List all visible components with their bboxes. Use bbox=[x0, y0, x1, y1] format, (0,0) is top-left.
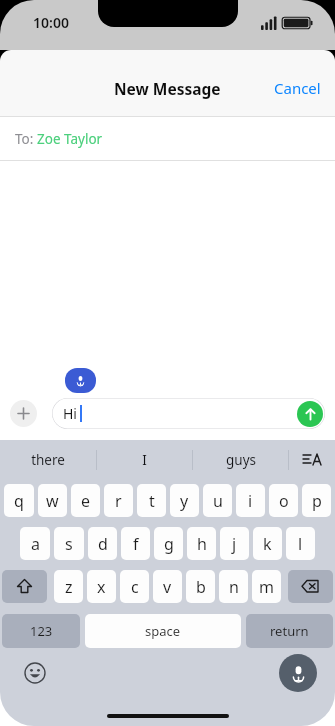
button[interactable]: Add attachment bbox=[10, 400, 37, 427]
staticText: k bbox=[263, 533, 272, 555]
button[interactable]: Formatting bbox=[289, 440, 335, 480]
button[interactable]: c bbox=[120, 570, 149, 603]
staticText: guys bbox=[226, 451, 256, 469]
staticText: return bbox=[270, 622, 309, 640]
button[interactable]: Shift bbox=[2, 570, 47, 603]
button[interactable]: space bbox=[85, 614, 241, 648]
button[interactable]: Emoji bbox=[22, 660, 48, 686]
button[interactable]: n bbox=[219, 570, 248, 603]
button[interactable]: r bbox=[104, 484, 133, 517]
button[interactable]: Backspace bbox=[288, 570, 333, 603]
staticText: q bbox=[14, 490, 24, 512]
button[interactable]: q bbox=[4, 484, 34, 517]
staticText: j bbox=[232, 533, 237, 555]
button[interactable]: s bbox=[54, 527, 84, 560]
button[interactable]: g bbox=[154, 527, 183, 560]
button[interactable]: z bbox=[54, 570, 83, 603]
button[interactable]: Send bbox=[297, 401, 323, 427]
staticText: u bbox=[213, 490, 223, 512]
button[interactable]: Dictation bbox=[279, 654, 317, 692]
button[interactable]: f bbox=[121, 527, 150, 560]
staticText: y bbox=[180, 490, 189, 512]
button[interactable]: k bbox=[253, 527, 282, 560]
button[interactable]: j bbox=[220, 527, 249, 560]
button[interactable]: b bbox=[186, 570, 215, 603]
staticText: Hi bbox=[63, 404, 77, 423]
staticText: I bbox=[142, 451, 147, 469]
staticText: o bbox=[279, 490, 289, 512]
button[interactable]: m bbox=[252, 570, 281, 603]
staticText: d bbox=[98, 533, 108, 555]
button[interactable]: return bbox=[246, 614, 333, 648]
button[interactable]: d bbox=[88, 527, 117, 560]
button[interactable]: 123 bbox=[2, 614, 80, 648]
staticText: 123 bbox=[30, 622, 53, 640]
staticText: Zoe Taylor bbox=[37, 130, 103, 148]
button[interactable]: u bbox=[203, 484, 232, 517]
button[interactable]: there bbox=[0, 440, 96, 480]
button[interactable]: l bbox=[286, 527, 315, 560]
staticText: l bbox=[298, 533, 303, 555]
staticText: e bbox=[81, 490, 91, 512]
button[interactable]: To: bbox=[0, 117, 335, 160]
staticText: a bbox=[31, 533, 40, 555]
staticText: To: bbox=[15, 130, 37, 148]
staticText: Cancel bbox=[274, 78, 321, 98]
button[interactable]: Hi bbox=[52, 398, 325, 429]
staticText: s bbox=[65, 533, 73, 555]
staticText: i bbox=[248, 490, 253, 512]
staticText: p bbox=[312, 490, 322, 512]
staticText: there bbox=[31, 451, 65, 469]
staticText: space bbox=[145, 622, 181, 640]
staticText: b bbox=[196, 576, 206, 598]
button[interactable]: guys bbox=[193, 440, 288, 480]
staticText: t bbox=[149, 490, 155, 512]
staticText: c bbox=[131, 576, 139, 598]
button[interactable]: I bbox=[97, 440, 192, 480]
staticText: n bbox=[229, 576, 239, 598]
staticText: g bbox=[164, 533, 174, 555]
button[interactable]: y bbox=[170, 484, 199, 517]
button[interactable]: w bbox=[38, 484, 67, 517]
button[interactable]: i bbox=[236, 484, 265, 517]
button[interactable]: e bbox=[71, 484, 100, 517]
staticText: f bbox=[133, 533, 139, 555]
button[interactable]: a bbox=[20, 527, 50, 560]
staticText: h bbox=[197, 533, 207, 555]
staticText: New Message bbox=[114, 78, 221, 99]
button[interactable]: h bbox=[187, 527, 216, 560]
button[interactable]: x bbox=[87, 570, 116, 603]
staticText: x bbox=[97, 576, 106, 598]
button[interactable]: p bbox=[302, 484, 331, 517]
button[interactable]: o bbox=[269, 484, 298, 517]
staticText: w bbox=[46, 490, 59, 512]
button[interactable]: Cancel bbox=[260, 72, 335, 104]
staticText: m bbox=[259, 576, 274, 598]
staticText: r bbox=[115, 490, 122, 512]
staticText: v bbox=[163, 576, 172, 598]
button[interactable]: Dictate bbox=[65, 368, 96, 393]
button[interactable]: v bbox=[153, 570, 182, 603]
staticText: 10:00 bbox=[33, 13, 69, 32]
staticText: z bbox=[65, 576, 73, 598]
button[interactable]: t bbox=[137, 484, 166, 517]
